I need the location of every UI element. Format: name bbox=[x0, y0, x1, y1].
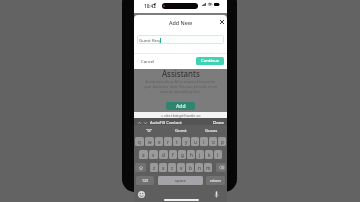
staticText: z bbox=[153, 165, 156, 171]
staticText: 123 bbox=[142, 178, 149, 183]
button[interactable]: 123 bbox=[136, 176, 154, 185]
staticText: c bbox=[171, 165, 174, 171]
button[interactable]: k bbox=[205, 150, 213, 159]
button[interactable]: Emoji keyboard bbox=[138, 191, 145, 198]
staticText: “G” bbox=[146, 128, 153, 134]
staticText: return bbox=[210, 178, 221, 183]
button[interactable]: a bbox=[139, 150, 148, 159]
button[interactable]: o bbox=[209, 137, 217, 146]
staticText: t bbox=[176, 139, 178, 145]
staticText: q bbox=[138, 139, 141, 145]
staticText: space bbox=[175, 178, 186, 183]
staticText: k bbox=[208, 152, 211, 158]
staticText: l bbox=[217, 152, 219, 158]
staticText: i bbox=[203, 139, 205, 145]
button[interactable]: f bbox=[169, 150, 177, 159]
staticText: o bbox=[212, 139, 215, 145]
staticText: Gusus bbox=[205, 128, 218, 134]
staticText: Done bbox=[213, 119, 224, 125]
staticText: e bbox=[158, 139, 161, 145]
button[interactable]: h bbox=[187, 150, 195, 159]
button[interactable]: space bbox=[158, 176, 203, 185]
staticText: Cancel bbox=[141, 58, 155, 64]
button[interactable]: Add bbox=[166, 102, 195, 110]
button[interactable] bbox=[135, 163, 146, 172]
staticText: a bbox=[142, 152, 145, 158]
staticText: b bbox=[189, 165, 192, 171]
staticText: Assistants bbox=[162, 68, 200, 79]
button[interactable]: x bbox=[159, 163, 167, 172]
button[interactable]: Done bbox=[213, 119, 224, 125]
staticText: p bbox=[221, 139, 224, 145]
button[interactable]: l bbox=[214, 150, 222, 159]
staticText: j bbox=[199, 152, 201, 158]
button[interactable]: b bbox=[186, 163, 194, 172]
button[interactable]: t bbox=[173, 137, 181, 146]
staticText: AutoFill Contact bbox=[150, 119, 182, 125]
button[interactable]: c bbox=[168, 163, 176, 172]
staticText: m bbox=[206, 165, 211, 171]
staticText: h bbox=[190, 152, 193, 158]
staticText: Add bbox=[176, 103, 186, 110]
staticText: w bbox=[148, 139, 152, 145]
button[interactable]: Previous field bbox=[137, 120, 142, 125]
button[interactable]: p bbox=[218, 137, 226, 146]
staticText: u bbox=[194, 139, 197, 145]
staticText: g bbox=[181, 152, 184, 158]
staticText: d bbox=[162, 152, 165, 158]
button[interactable]: site.thatgirlhustle.co bbox=[161, 113, 201, 118]
staticText: Guest bbox=[175, 128, 187, 134]
button[interactable]: i bbox=[200, 137, 208, 146]
button[interactable]: q bbox=[135, 137, 144, 146]
button[interactable]: r bbox=[164, 137, 172, 146]
staticText: Guest Req bbox=[139, 37, 160, 43]
button[interactable]: g bbox=[178, 150, 186, 159]
staticText: Add New bbox=[169, 19, 193, 26]
button[interactable]: d bbox=[159, 150, 168, 159]
button[interactable] bbox=[216, 163, 226, 172]
staticText: site.thatgirlhustle.co bbox=[164, 113, 201, 118]
staticText: 10:42 bbox=[144, 3, 156, 9]
button[interactable]: y bbox=[182, 137, 190, 146]
button[interactable]: n bbox=[195, 163, 203, 172]
button[interactable]: w bbox=[145, 137, 154, 146]
button[interactable]: Guest bbox=[165, 125, 196, 137]
staticText: Assistants allow AI to respond based on … bbox=[143, 79, 218, 94]
staticText: Continue bbox=[201, 58, 220, 64]
staticText: x bbox=[162, 165, 165, 171]
button[interactable]: Next field bbox=[143, 120, 148, 125]
button[interactable]: return bbox=[206, 176, 225, 185]
button[interactable]: Guest Req bbox=[137, 35, 224, 44]
button[interactable]: Dictation bbox=[213, 190, 219, 198]
staticText: n bbox=[198, 165, 201, 171]
button[interactable]: Continue bbox=[196, 57, 224, 65]
button[interactable]: v bbox=[177, 163, 185, 172]
button[interactable]: Gusus bbox=[196, 125, 227, 137]
staticText: v bbox=[180, 165, 183, 171]
staticText: f bbox=[172, 152, 174, 158]
button[interactable]: j bbox=[196, 150, 204, 159]
staticText: r bbox=[167, 139, 169, 145]
button[interactable]: u bbox=[191, 137, 199, 146]
button[interactable]: e bbox=[155, 137, 163, 146]
button[interactable]: Cancel bbox=[140, 57, 156, 65]
button[interactable]: s bbox=[149, 150, 158, 159]
staticText: s bbox=[152, 152, 155, 158]
button[interactable]: “G” bbox=[134, 125, 165, 137]
button[interactable]: Close bbox=[217, 17, 226, 26]
staticText: y bbox=[185, 139, 188, 145]
button[interactable]: m bbox=[204, 163, 212, 172]
button[interactable]: z bbox=[150, 163, 158, 172]
